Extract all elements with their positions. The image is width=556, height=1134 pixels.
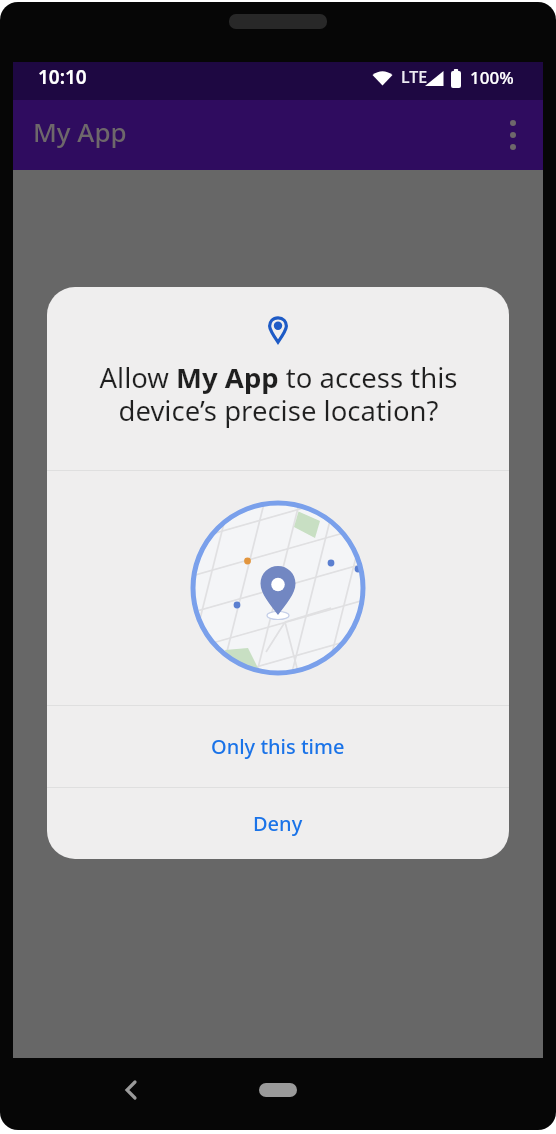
button[interactable] — [493, 111, 533, 159]
button[interactable] — [259, 1083, 297, 1097]
staticText: 10:10 — [38, 64, 87, 90]
button[interactable]: Only this time — [47, 706, 509, 787]
staticText: LTE — [401, 66, 428, 88]
staticText: Allow My App to access this device’s pre… — [99, 359, 458, 429]
button[interactable]: Deny — [47, 788, 509, 859]
staticText: My App — [33, 114, 127, 149]
staticText: Deny — [253, 810, 303, 837]
staticText: 100% — [470, 66, 514, 89]
button[interactable] — [118, 1080, 142, 1100]
staticText: Only this time — [211, 733, 345, 760]
